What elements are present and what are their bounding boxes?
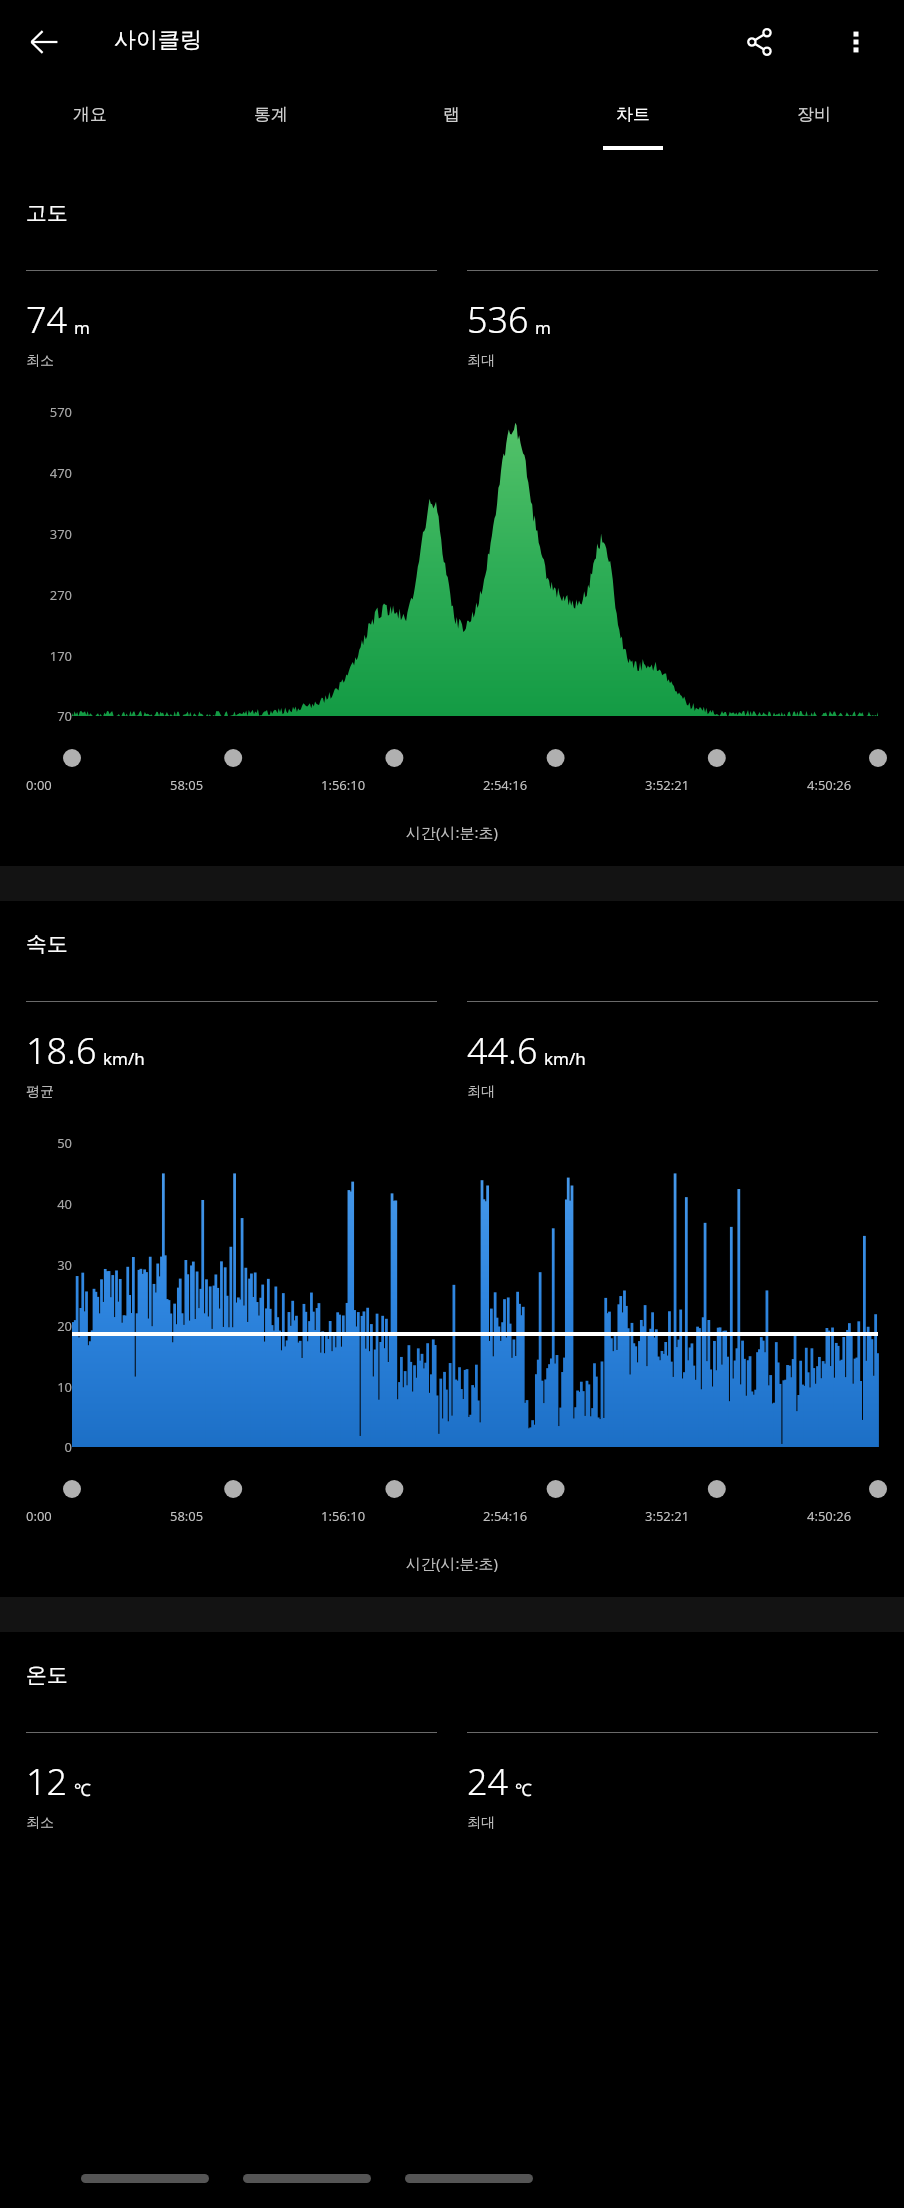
staticText: 0:00 (26, 776, 52, 794)
staticText: 개요 (73, 104, 107, 125)
staticText: 44.6 (467, 1026, 538, 1075)
staticText: 570 (0, 403, 72, 421)
staticText: 속도 (26, 931, 68, 957)
staticText: 536 (467, 295, 529, 344)
button[interactable]: Share (732, 14, 788, 70)
staticText: 0:00 (26, 1507, 52, 1525)
button[interactable]: 통계 (180, 84, 361, 170)
staticText: 시간(시:분:초) (26, 1553, 878, 1573)
button[interactable]: More options (828, 14, 884, 70)
staticText: 사이클링 (114, 26, 202, 54)
staticText: 170 (0, 647, 72, 665)
staticText: 270 (0, 586, 72, 604)
staticText: 50 (0, 1134, 72, 1152)
staticText: m (74, 316, 90, 339)
staticText: 10 (0, 1378, 72, 1396)
staticText: 4:50:26 (807, 776, 852, 794)
staticText: 30 (0, 1256, 72, 1274)
staticText: 20 (0, 1317, 72, 1335)
staticText: 470 (0, 464, 72, 482)
staticText: 370 (0, 525, 72, 543)
staticText: 3:52:21 (645, 1507, 690, 1525)
staticText: 4:50:26 (807, 1507, 852, 1525)
button[interactable]: Home (243, 2174, 371, 2183)
staticText: 최소 (26, 1814, 54, 1832)
staticText: 통계 (254, 104, 288, 125)
staticText: km/h (103, 1047, 145, 1070)
staticText: 최대 (467, 352, 495, 370)
button[interactable]: 랩 (361, 84, 542, 170)
button[interactable]: Recents (81, 2174, 209, 2183)
staticText: km/h (544, 1047, 586, 1070)
staticText: 1:56:10 (321, 1507, 366, 1525)
button[interactable]: 개요 (0, 84, 180, 170)
staticText: 고도 (26, 200, 68, 226)
staticText: 차트 (616, 104, 650, 125)
button[interactable]: Back (16, 14, 72, 70)
staticText: 최대 (467, 1083, 495, 1101)
staticText: 0 (0, 1438, 72, 1456)
staticText: 12 (26, 1757, 68, 1806)
staticText: 2:54:16 (483, 1507, 528, 1525)
staticText: 2:54:16 (483, 776, 528, 794)
staticText: 시간(시:분:초) (26, 822, 878, 842)
staticText: 평균 (26, 1083, 54, 1101)
staticText: 40 (0, 1195, 72, 1213)
button[interactable]: 차트 (542, 84, 723, 170)
staticText: 3:52:21 (645, 776, 690, 794)
button[interactable]: Back (405, 2174, 533, 2183)
button[interactable]: 장비 (723, 84, 904, 170)
staticText: 18.6 (26, 1026, 97, 1075)
staticText: 1:56:10 (321, 776, 366, 794)
staticText: ℃ (74, 1778, 91, 1801)
staticText: 최소 (26, 352, 54, 370)
staticText: 74 (26, 295, 68, 344)
staticText: m (535, 316, 551, 339)
staticText: 58:05 (170, 1507, 204, 1525)
staticText: ℃ (515, 1778, 532, 1801)
staticText: 24 (467, 1757, 509, 1806)
staticText: 장비 (797, 104, 831, 125)
staticText: 랩 (443, 104, 460, 125)
staticText: 온도 (26, 1662, 68, 1688)
staticText: 최대 (467, 1814, 495, 1832)
staticText: 70 (0, 707, 72, 725)
staticText: 58:05 (170, 776, 204, 794)
